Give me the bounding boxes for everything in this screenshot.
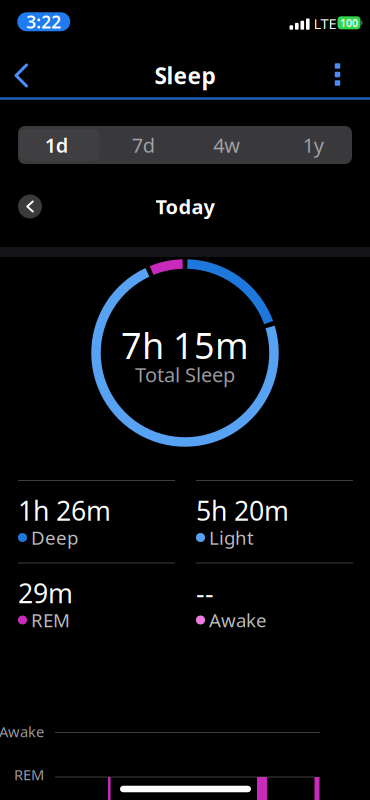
staticText: Light — [209, 525, 254, 550]
staticText: -- — [196, 575, 214, 611]
button[interactable] — [1, 55, 41, 95]
button[interactable]: 1d — [18, 126, 101, 164]
staticText: 1y — [303, 132, 324, 158]
button[interactable] — [317, 54, 357, 94]
staticText: Today — [155, 193, 214, 220]
staticText: REM — [31, 608, 70, 632]
staticText: LTE — [313, 14, 336, 33]
button[interactable] — [18, 194, 42, 218]
staticText: Sleep — [154, 60, 215, 90]
staticText: REM — [14, 765, 44, 784]
staticText: Deep — [31, 525, 78, 550]
staticText: 3:22 — [26, 10, 61, 33]
staticText: 5h 20m — [196, 493, 289, 528]
button[interactable]: 3:22 — [17, 12, 70, 31]
staticText: Awake — [0, 722, 44, 741]
staticText: 7d — [132, 132, 155, 158]
staticText: 100 — [340, 16, 358, 30]
button[interactable]: 4w — [185, 126, 268, 164]
staticText: 29m — [18, 575, 73, 611]
staticText: 1h 26m — [18, 493, 111, 528]
staticText: 1d — [45, 132, 69, 158]
staticText: 7h 15m — [121, 321, 249, 369]
staticText: Total Sleep — [135, 361, 235, 388]
staticText: 4w — [213, 132, 240, 158]
button[interactable]: 7d — [101, 126, 185, 164]
staticText: Awake — [209, 608, 267, 632]
button[interactable]: 1y — [268, 126, 352, 164]
